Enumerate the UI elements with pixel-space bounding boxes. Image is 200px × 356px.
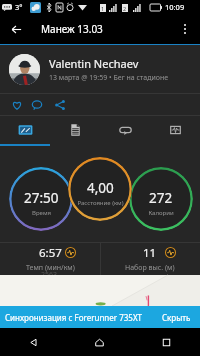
button[interactable]: 4,00	[68, 157, 132, 221]
button[interactable]: Home	[66, 328, 133, 356]
staticText: 27:50	[24, 189, 59, 207]
button[interactable]: Like	[9, 97, 25, 113]
staticText: 4,00	[87, 179, 114, 197]
button[interactable]: Recents	[133, 328, 200, 356]
staticText: Расстояние (км)	[77, 199, 124, 207]
button[interactable]: Back	[0, 14, 32, 44]
button[interactable]: 11	[100, 243, 200, 275]
staticText: 11	[143, 245, 157, 261]
staticText: 2563	[41, 270, 58, 280]
button[interactable]: Back	[0, 328, 66, 356]
button[interactable]: Details	[50, 116, 100, 144]
staticText: 13 марта @ 19:59 • Бег на стадионе	[49, 73, 169, 83]
button[interactable]: Valentin Nechaev	[0, 45, 200, 93]
staticText: 272	[149, 189, 173, 207]
staticText: Манеж 13.03	[41, 22, 103, 36]
button[interactable]: Map	[0, 116, 50, 144]
button[interactable]: Charts	[150, 116, 200, 144]
button[interactable]: 272	[129, 167, 193, 231]
staticText: Скрыть	[162, 312, 191, 323]
staticText: 10:09	[165, 2, 185, 12]
button[interactable]: Share	[52, 97, 68, 113]
staticText: 1	[101, 5, 105, 12]
staticText: Время	[32, 209, 51, 217]
staticText: Valentin Nechaev	[49, 56, 139, 71]
staticText: 3°	[15, 2, 23, 12]
button[interactable]: Laps	[100, 116, 150, 144]
staticText: Синхронизация с Forerunner 735XT	[5, 312, 143, 323]
button[interactable]: More options	[170, 14, 200, 44]
button[interactable]: 6:57	[0, 243, 100, 275]
staticText: Набор выс. (м)	[125, 263, 175, 273]
staticText: 6:57	[39, 245, 62, 261]
button[interactable]: Comment	[29, 97, 45, 113]
button[interactable]: Скрыть	[160, 312, 193, 323]
staticText: Калории	[148, 209, 174, 217]
staticText: Темп (мин/км)	[26, 263, 75, 273]
staticText: 2	[123, 5, 127, 12]
button[interactable]: 27:50	[9, 167, 73, 231]
